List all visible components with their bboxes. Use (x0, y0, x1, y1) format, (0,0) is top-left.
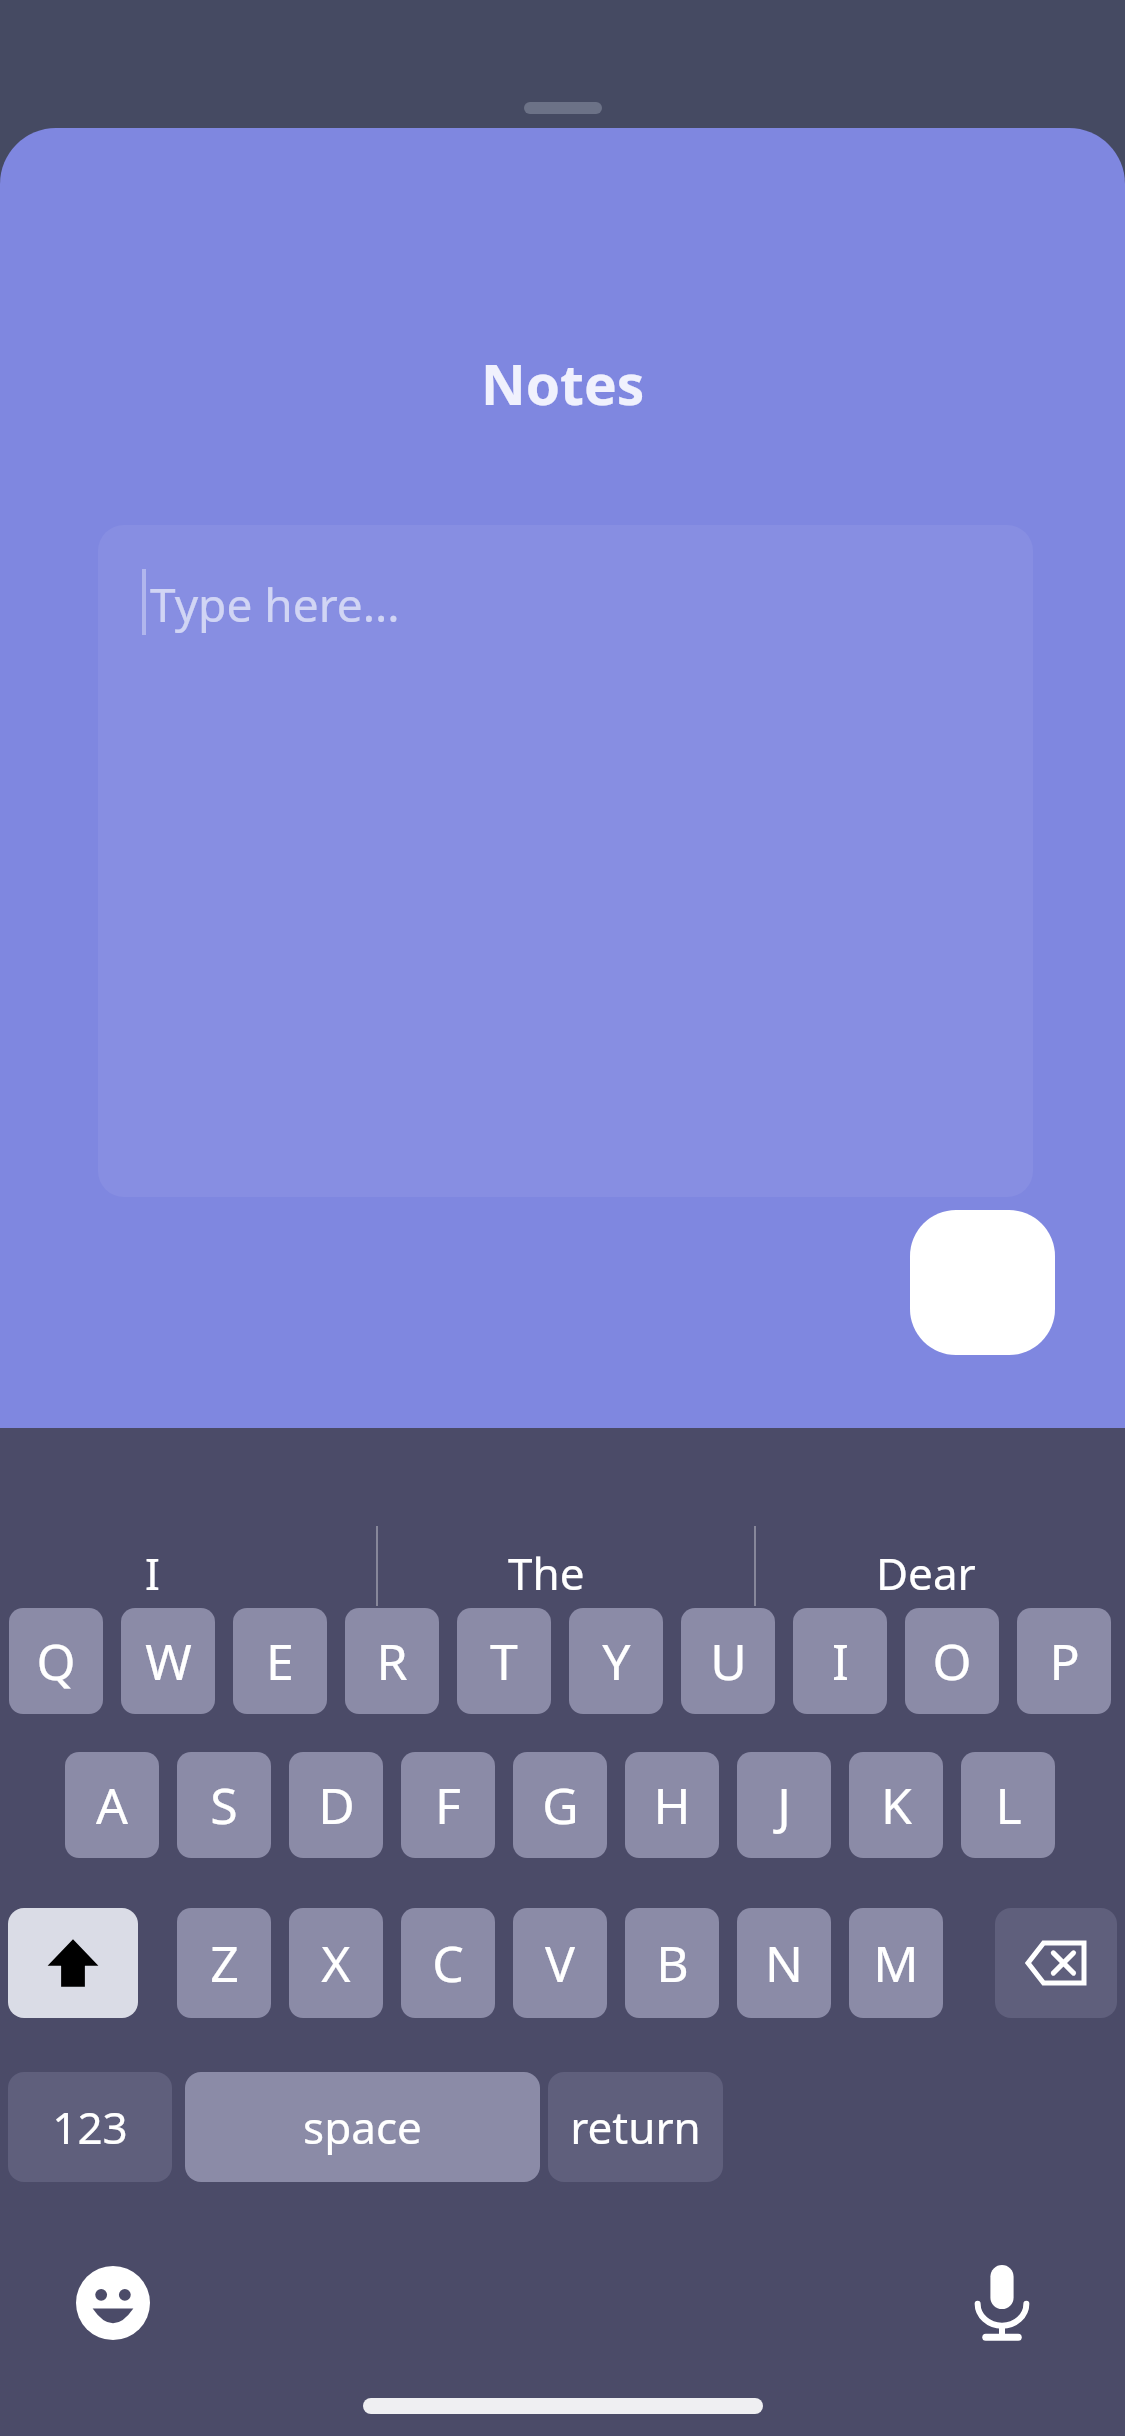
button[interactable]: I (793, 1608, 887, 1714)
staticText: Dear (876, 1543, 976, 1603)
staticText: I (145, 1543, 160, 1603)
button[interactable]: D (289, 1752, 383, 1858)
button[interactable]: New note (910, 1210, 1055, 1355)
staticText: Type here... (150, 573, 400, 636)
staticText: Notes (481, 346, 645, 421)
staticText: W (145, 1627, 192, 1695)
staticText: K (881, 1771, 912, 1839)
button[interactable]: 123 (8, 2072, 172, 2182)
button[interactable]: N (737, 1908, 831, 2018)
button[interactable]: X (289, 1908, 383, 2018)
button[interactable]: L (961, 1752, 1055, 1858)
staticText: X (321, 1929, 351, 1997)
staticText: N (765, 1929, 803, 1997)
staticText: G (542, 1771, 579, 1839)
button[interactable]: Emoji (63, 2253, 163, 2353)
button[interactable]: space (185, 2072, 540, 2182)
staticText: C (432, 1929, 464, 1997)
button[interactable]: E (233, 1608, 327, 1714)
staticText: L (995, 1771, 1022, 1839)
staticText: J (777, 1771, 791, 1839)
button[interactable]: J (737, 1752, 831, 1858)
staticText: U (710, 1627, 747, 1695)
staticText: O (932, 1627, 972, 1695)
staticText: F (435, 1771, 461, 1839)
staticText: Q (36, 1627, 76, 1695)
button[interactable]: M (849, 1908, 943, 2018)
staticText: A (96, 1771, 128, 1839)
button[interactable]: Y (569, 1608, 663, 1714)
staticText: V (545, 1929, 575, 1997)
staticText: M (873, 1929, 919, 1997)
button[interactable]: Z (177, 1908, 271, 2018)
staticText: D (318, 1771, 355, 1839)
staticText: B (656, 1929, 689, 1997)
button[interactable]: Q (9, 1608, 103, 1714)
staticText: S (210, 1771, 238, 1839)
button[interactable]: C (401, 1908, 495, 2018)
button[interactable]: K (849, 1752, 943, 1858)
button[interactable]: A (65, 1752, 159, 1858)
staticText: space (303, 2097, 422, 2157)
staticText: T (490, 1627, 518, 1695)
staticText: Y (602, 1627, 631, 1695)
button[interactable]: F (401, 1752, 495, 1858)
button[interactable]: P (1017, 1608, 1111, 1714)
staticText: return (570, 2097, 701, 2157)
button[interactable]: Backspace (995, 1908, 1117, 2018)
staticText: Z (210, 1929, 239, 1997)
button[interactable]: H (625, 1752, 719, 1858)
button[interactable]: return (548, 2072, 723, 2182)
button[interactable]: W (121, 1608, 215, 1714)
staticText: I (832, 1627, 849, 1695)
button[interactable]: Type here... (98, 525, 1033, 1197)
button[interactable]: T (457, 1608, 551, 1714)
button[interactable]: O (905, 1608, 999, 1714)
staticText: E (266, 1627, 294, 1695)
button[interactable]: Shift (8, 1908, 138, 2018)
button[interactable]: B (625, 1908, 719, 2018)
staticText: The (508, 1543, 585, 1603)
staticText: R (376, 1627, 408, 1695)
button[interactable]: U (681, 1608, 775, 1714)
button[interactable]: V (513, 1908, 607, 2018)
staticText: H (653, 1771, 691, 1839)
button[interactable]: G (513, 1752, 607, 1858)
staticText: 123 (52, 2097, 128, 2157)
button[interactable]: Voice input (952, 2253, 1052, 2353)
button[interactable]: S (177, 1752, 271, 1858)
staticText: P (1049, 1627, 1080, 1695)
button[interactable]: R (345, 1608, 439, 1714)
